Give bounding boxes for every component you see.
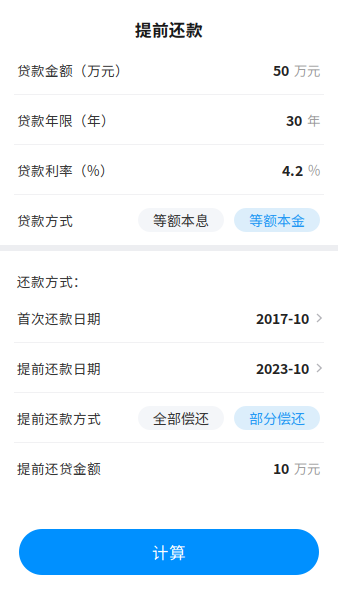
button[interactable]: 等额本金 [234, 208, 320, 232]
button[interactable]: 部分偿还 [234, 406, 320, 430]
staticText: 等额本金 [249, 210, 305, 230]
button[interactable]: 计算 [19, 529, 319, 575]
staticText: 等额本息 [153, 210, 209, 230]
staticText: 2023-10 [256, 358, 309, 378]
staticText: 贷款利率（%） [17, 160, 114, 180]
staticText: % [308, 160, 320, 180]
staticText: 提前还贷金额 [17, 458, 101, 478]
staticText: 部分偿还 [249, 408, 305, 428]
staticText: 提前还款 [135, 17, 203, 41]
staticText: 2017-10 [256, 308, 309, 328]
staticText: 10 [273, 458, 289, 478]
staticText: 万元 [294, 60, 320, 80]
staticText: 50 [273, 60, 289, 80]
staticText: 年 [307, 110, 320, 130]
button[interactable]: 提前还款日期 [0, 343, 338, 393]
staticText: 还款方式： [17, 271, 87, 291]
staticText: 贷款方式 [17, 210, 73, 230]
button[interactable]: 等额本息 [138, 208, 224, 232]
staticText: 贷款金额（万元） [17, 60, 129, 80]
staticText: 万元 [294, 458, 320, 478]
staticText: 全部偿还 [153, 408, 209, 428]
button[interactable]: 首次还款日期 [0, 293, 338, 343]
staticText: 首次还款日期 [17, 308, 101, 328]
staticText: 提前还款日期 [17, 358, 101, 378]
staticText: 贷款年限（年） [17, 110, 115, 130]
staticText: 30 [286, 110, 302, 130]
staticText: 计算 [152, 540, 186, 564]
staticText: 提前还款方式 [17, 408, 101, 428]
staticText: 4.2 [282, 160, 303, 180]
button[interactable]: 全部偿还 [138, 406, 224, 430]
